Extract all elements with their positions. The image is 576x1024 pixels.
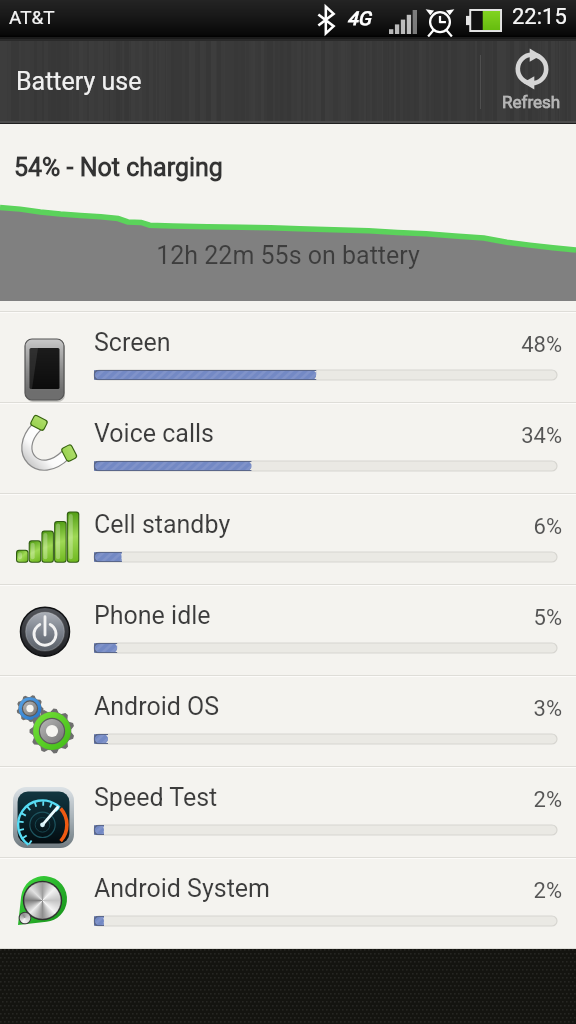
button[interactable]: Voice calls	[0, 402, 576, 493]
staticText: 54% - Not charging	[14, 153, 223, 182]
staticText: Cell standby	[94, 510, 231, 539]
staticText: Screen	[94, 328, 171, 357]
staticText: Speed Test	[94, 783, 218, 812]
button[interactable]: Screen	[0, 311, 576, 402]
button[interactable]: Android OS	[0, 675, 576, 766]
staticText: Android OS	[94, 692, 220, 721]
staticText: 6%	[0, 514, 562, 540]
button[interactable]: Refresh	[487, 37, 576, 124]
staticText: 12h 22m 55s on battery	[0, 241, 576, 270]
staticText: 4G	[347, 7, 371, 29]
staticText: Phone idle	[94, 601, 211, 630]
staticText: Refresh	[502, 92, 561, 112]
staticText: 3%	[0, 696, 562, 722]
button[interactable]: Cell standby	[0, 493, 576, 584]
staticText: Battery use	[16, 67, 142, 96]
staticText: AT&T	[9, 6, 55, 28]
button[interactable]: Phone idle	[0, 584, 576, 675]
button[interactable]: Speed Test	[0, 766, 576, 857]
staticText: 22:15	[512, 4, 567, 30]
staticText: 48%	[0, 332, 562, 358]
staticText: Android System	[94, 874, 271, 903]
staticText: 2%	[0, 878, 562, 904]
staticText: Voice calls	[94, 419, 214, 448]
button[interactable]: Android System	[0, 857, 576, 948]
staticText: 5%	[0, 605, 562, 631]
staticText: 34%	[0, 423, 562, 449]
staticText: 2%	[0, 787, 562, 813]
